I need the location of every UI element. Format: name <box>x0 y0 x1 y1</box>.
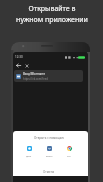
button[interactable]: Назад <box>15 62 22 69</box>
button[interactable]: Поделиться <box>23 62 30 69</box>
staticText: 12:30 <box>15 55 23 59</box>
staticText: Chr <box>67 155 71 158</box>
staticText: Вход ВКонтакте <box>23 72 45 76</box>
button[interactable]: ВКонт <box>39 146 59 158</box>
button[interactable]: Chr <box>59 146 79 158</box>
staticText: Открывайте в нужном приложении <box>16 4 88 24</box>
button[interactable]: Вход ВКонтакте <box>14 70 83 82</box>
staticText: https://vk.com/feed <box>23 77 48 81</box>
button[interactable]: Отмена <box>39 169 59 175</box>
staticText: ВКонт <box>46 155 53 158</box>
staticText: Диск <box>26 155 32 158</box>
staticText: Отмена <box>43 170 55 174</box>
staticText: Открыть с помощью <box>34 136 64 140</box>
button[interactable]: Диск <box>19 146 39 158</box>
